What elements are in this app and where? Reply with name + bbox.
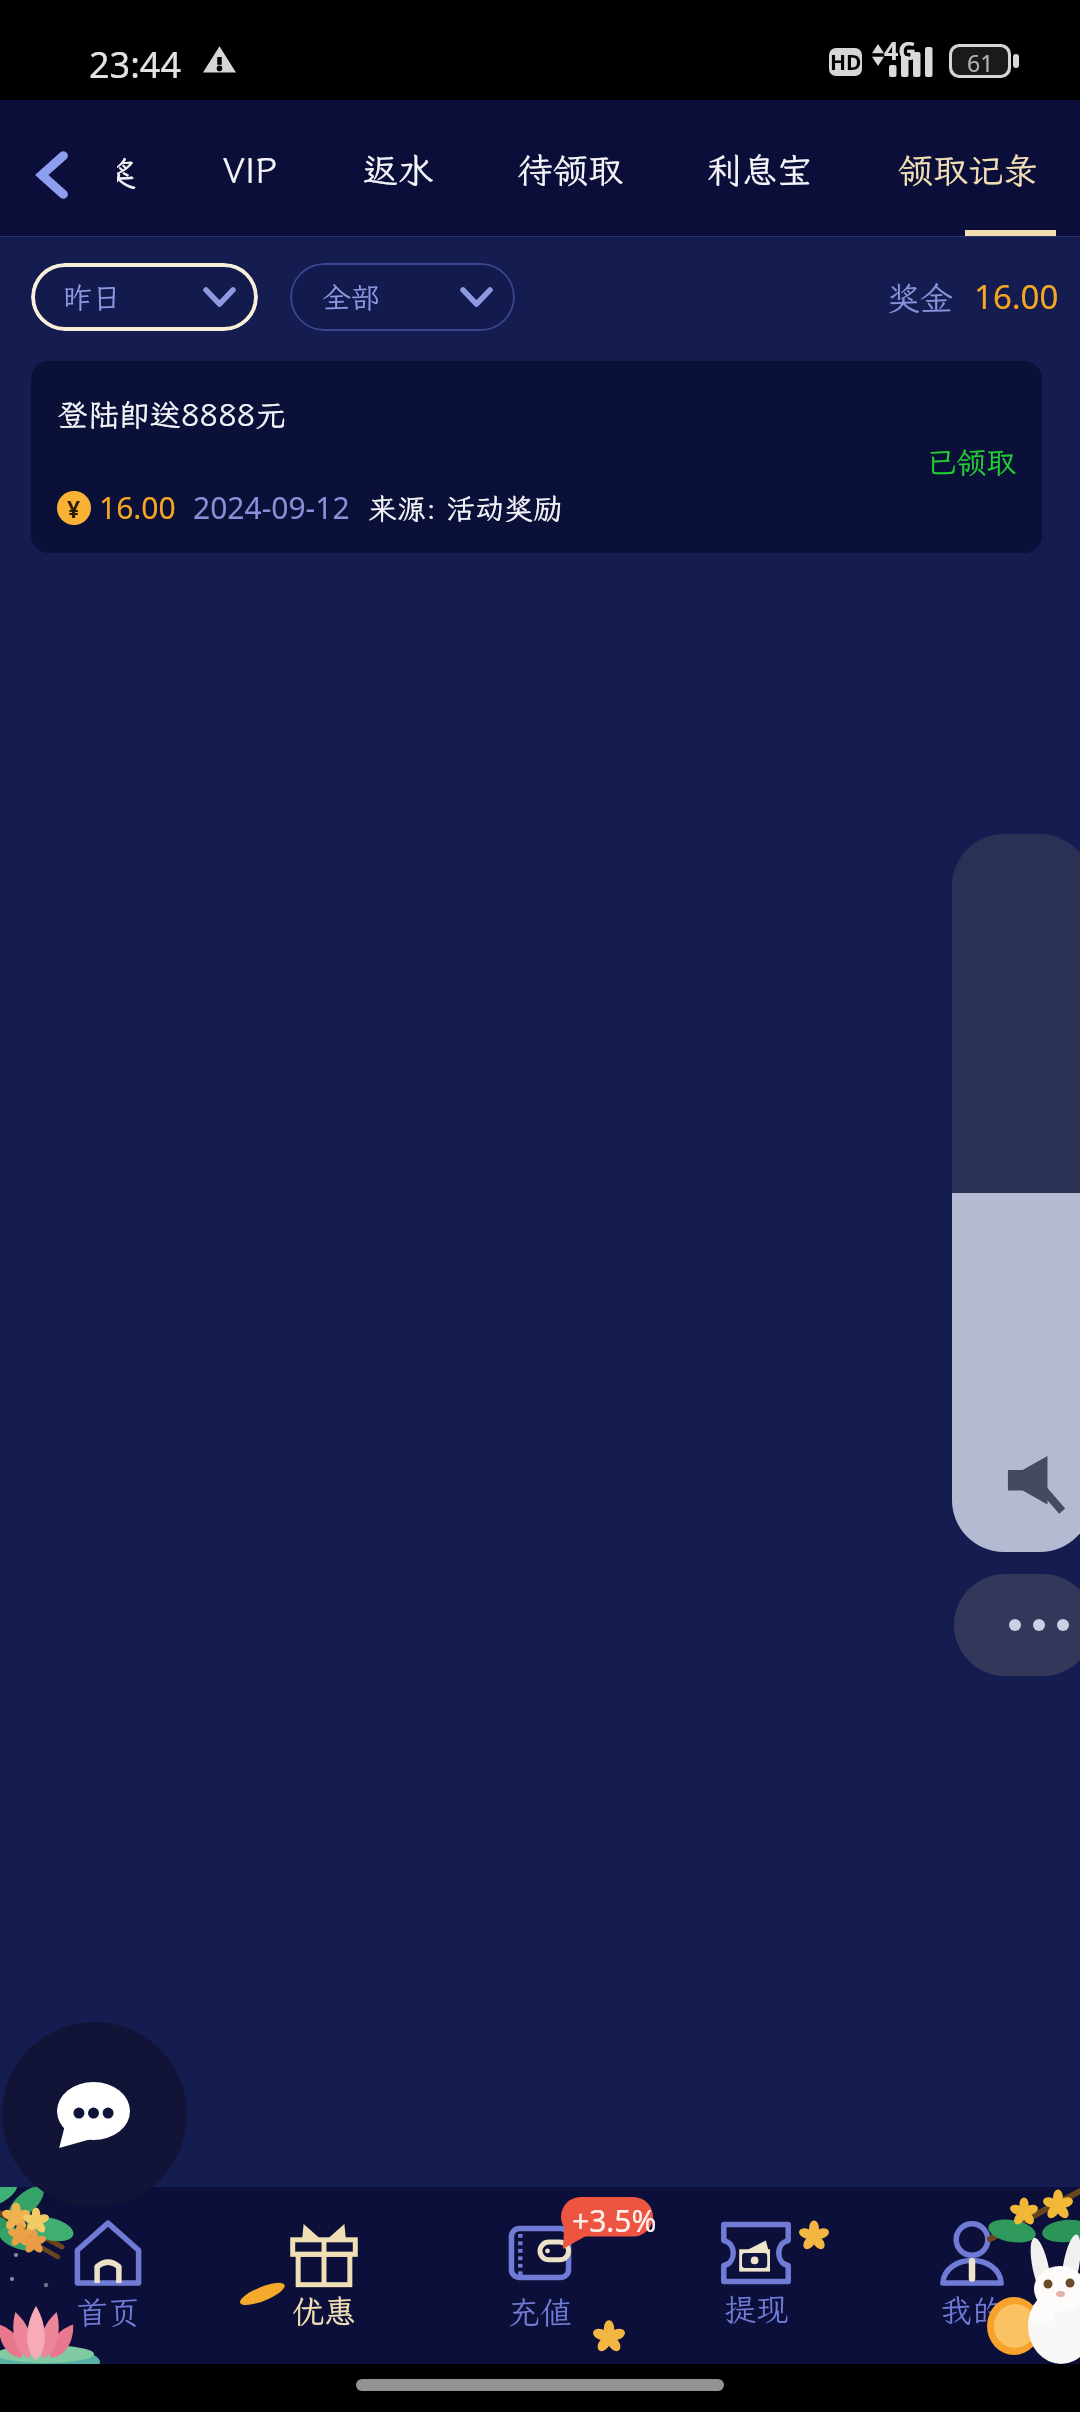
staticText: 4G: [884, 33, 917, 67]
button[interactable]: 领取记录: [878, 128, 1058, 212]
staticText: 奖金: [887, 276, 953, 319]
button[interactable]: VIP: [160, 128, 340, 212]
staticText: 待领取: [518, 147, 624, 193]
button[interactable]: 充值: [432, 2187, 648, 2364]
staticText: 首页: [76, 2291, 141, 2333]
staticText: 16.00: [99, 487, 176, 528]
staticText: 登陆即送8888元: [57, 394, 287, 435]
button[interactable]: 利息宝: [670, 128, 850, 212]
staticText: +3.5%: [572, 2200, 657, 2241]
staticText: 2024-09-12: [193, 487, 350, 528]
button[interactable]: 我的: [864, 2187, 1080, 2364]
staticText: 23:44: [89, 40, 182, 89]
button[interactable]: More volume options: [954, 1574, 1080, 1676]
staticText: VIP: [223, 147, 277, 193]
staticText: 61: [967, 47, 994, 75]
button[interactable]: Back: [14, 140, 90, 210]
button[interactable]: 待领取: [481, 128, 661, 212]
staticText: 奖: [117, 150, 120, 196]
button[interactable]: 提现: [648, 2187, 864, 2364]
staticText: 利息宝: [707, 147, 813, 193]
button[interactable]: Customer support chat: [2, 2022, 187, 2207]
button[interactable]: 昨日: [31, 263, 258, 331]
button[interactable]: 优惠: [216, 2187, 432, 2364]
staticText: 昨日: [63, 278, 122, 316]
staticText: HD: [830, 48, 862, 76]
staticText: 充值: [508, 2291, 573, 2333]
staticText: 优惠: [292, 2290, 357, 2332]
staticText: 16.00: [974, 274, 1059, 319]
button[interactable]: 全部: [290, 263, 515, 331]
button[interactable]: 登陆即送8888元: [31, 361, 1042, 553]
staticText: 领取记录: [898, 147, 1039, 193]
staticText: 已领取: [926, 442, 1016, 482]
staticText: 全部: [322, 278, 381, 316]
staticText: 我的: [940, 2289, 1005, 2331]
staticText: ¥: [67, 493, 81, 524]
staticText: 返水: [363, 147, 434, 193]
button[interactable]: 首页: [0, 2187, 216, 2364]
staticText: 来源: 活动奖励: [368, 489, 563, 527]
staticText: 提现: [724, 2288, 789, 2330]
button[interactable]: 返水: [308, 128, 488, 212]
button[interactable]: 奖: [117, 150, 136, 198]
